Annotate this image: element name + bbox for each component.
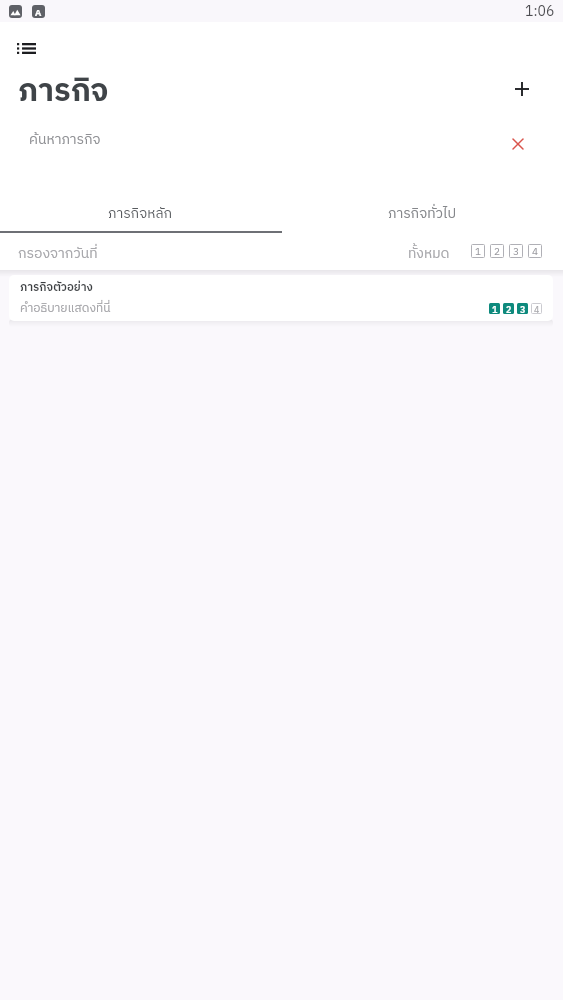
staticText: A [35,6,42,18]
staticText: คำอธิบายแสดงที่นี่ [20,299,111,319]
button[interactable]: Clear search [507,133,529,155]
staticText: ภารกิจหลัก [108,202,173,225]
staticText: 4 [534,303,540,314]
button[interactable]: ทั้งหมด [408,242,450,265]
staticText: 1 [492,303,498,314]
button[interactable]: Step 1 done [489,303,500,314]
button[interactable]: Filter level 3 [509,244,523,258]
button[interactable]: Step 3 done [517,303,528,314]
button[interactable]: Filter level 2 [490,244,504,258]
staticText: ภารกิจตัวอย่าง [20,278,93,297]
staticText: กรองจากวันที่ [18,242,98,265]
button[interactable]: Filter level 1 [471,244,485,258]
button[interactable]: ภารกิจทั่วไป [281,197,563,229]
staticText: 3 [520,303,526,314]
staticText: 4 [532,244,538,258]
staticText: 1 [475,244,481,258]
button[interactable]: Add task [509,76,535,102]
staticText: 3 [513,244,519,258]
staticText: 2 [506,303,512,314]
button[interactable]: ภารกิจตัวอย่าง [9,275,553,321]
button[interactable]: Filter level 4 [528,244,542,258]
staticText: ค้นหาภารกิจ [29,128,101,151]
staticText: 2 [494,244,500,258]
staticText: ภารกิจ [18,66,109,110]
staticText: ภารกิจทั่วไป [388,202,457,225]
button[interactable]: Menu [9,35,43,62]
button[interactable]: Step 2 done [503,303,514,314]
staticText: 1:06 [525,0,555,22]
button[interactable]: ภารกิจหลัก [0,197,281,229]
button[interactable]: Step 4 [531,303,542,314]
